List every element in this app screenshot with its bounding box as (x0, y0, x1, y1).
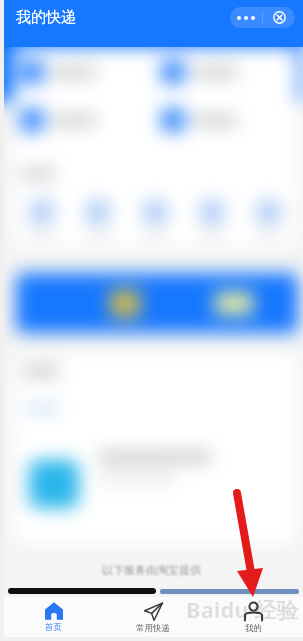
staticText: 常用快递 (136, 623, 170, 634)
button[interactable]: 首页 (4, 597, 103, 637)
staticText: Baidu 经验 (186, 594, 299, 624)
button[interactable]: Close (263, 7, 295, 28)
staticText: 我的快递 (16, 8, 76, 27)
button[interactable]: 我的 (203, 597, 303, 637)
button[interactable]: More options (230, 7, 262, 28)
staticText: 以下服务由淘宝提供 (4, 563, 299, 577)
button[interactable]: 常用快递 (103, 597, 203, 637)
staticText: 首页 (45, 622, 62, 633)
staticText: 我的 (245, 623, 262, 634)
